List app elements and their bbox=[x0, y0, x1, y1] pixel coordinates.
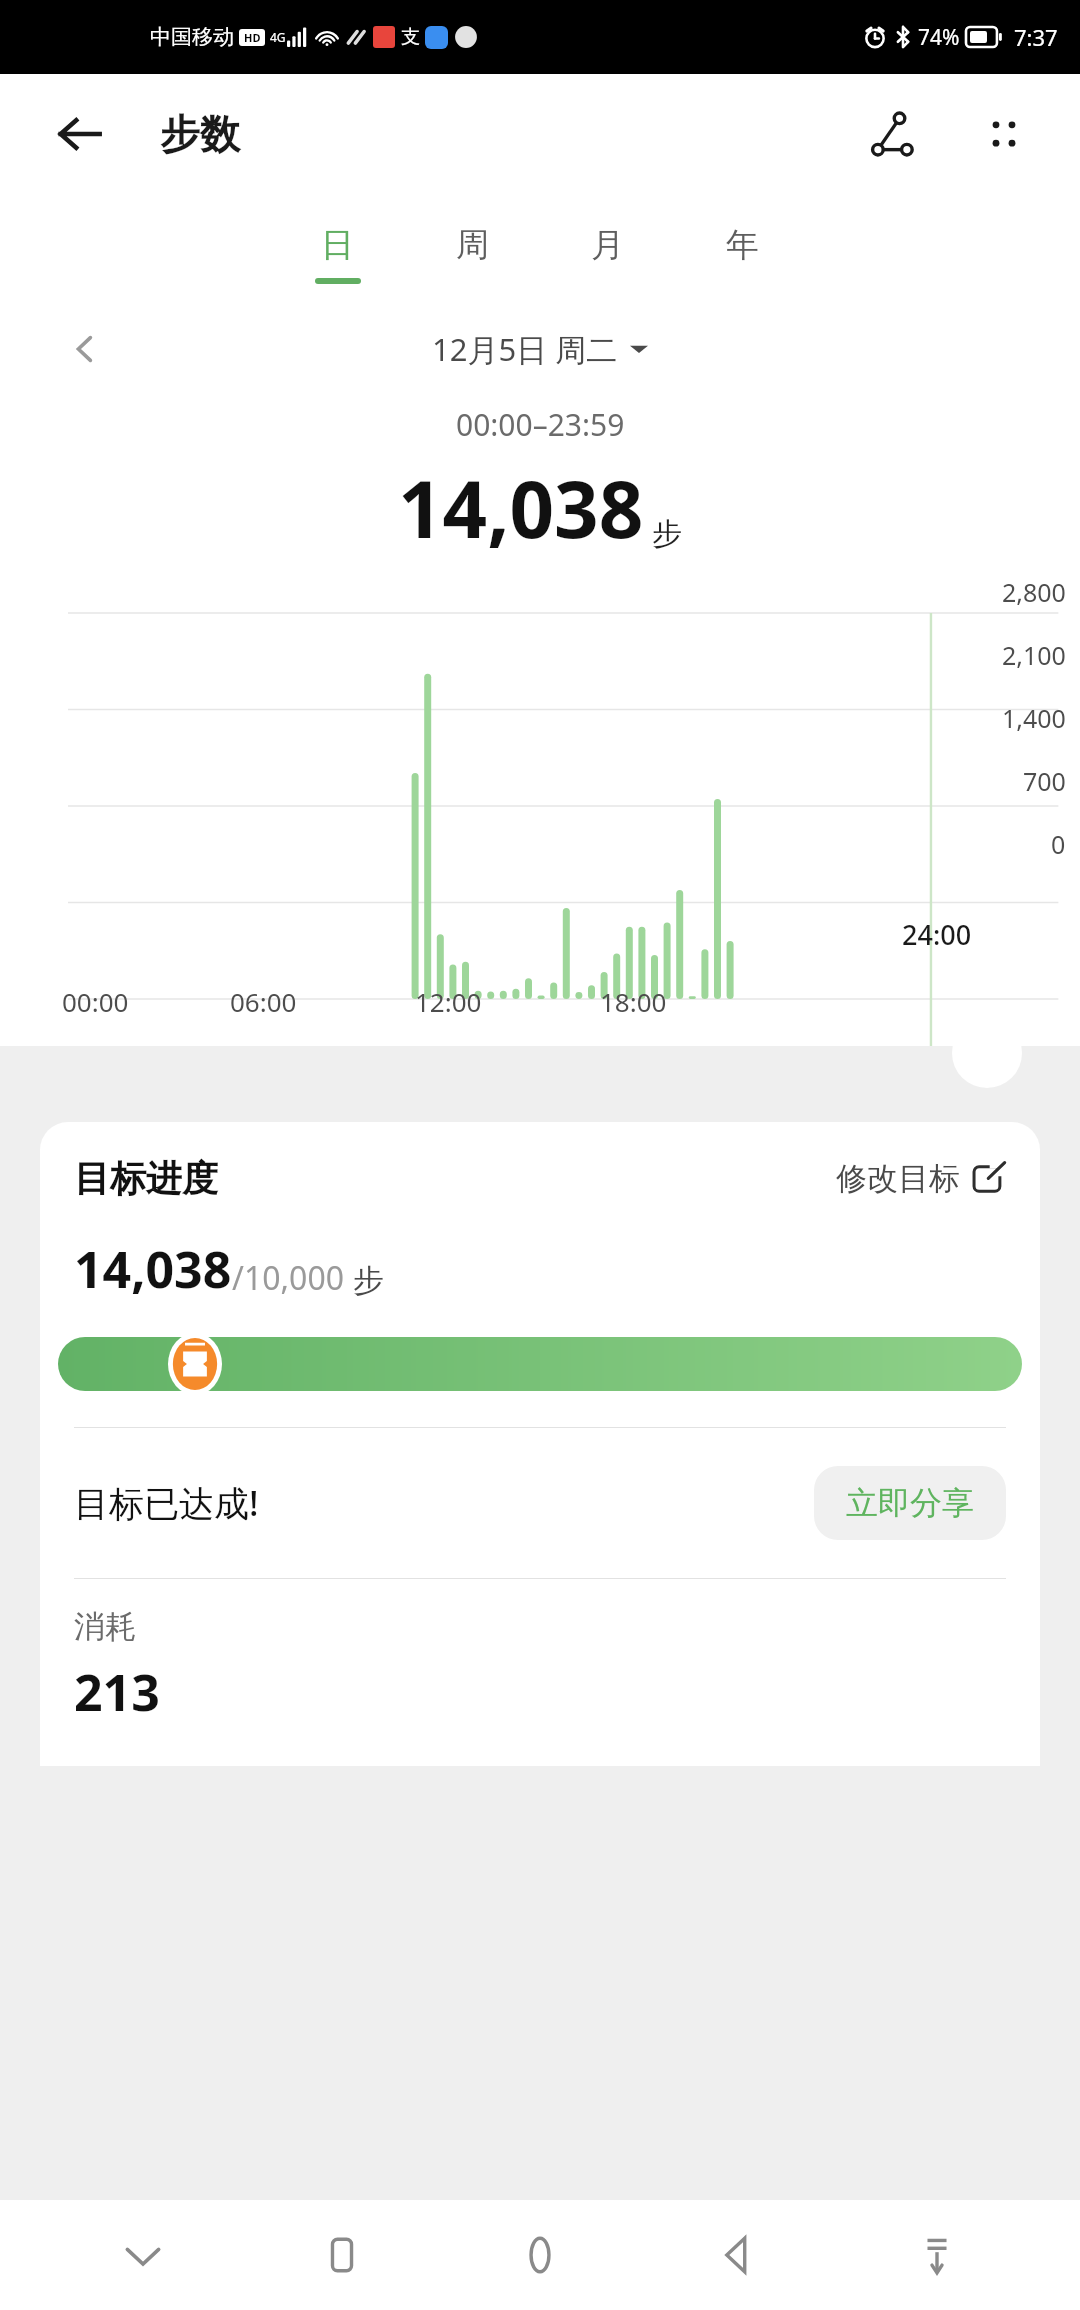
staticText: 2,800 bbox=[1002, 575, 1066, 609]
staticText: 支 bbox=[401, 25, 420, 49]
staticText: 00:00–23:59 bbox=[456, 404, 625, 445]
button[interactable]: 日 bbox=[270, 224, 405, 284]
staticText: 700 bbox=[1023, 764, 1066, 798]
staticText: 14,038 bbox=[398, 455, 644, 561]
staticText: 06:00 bbox=[230, 984, 297, 1019]
button[interactable]: 修改目标 bbox=[836, 1159, 1006, 1198]
staticText: 00:00 bbox=[62, 984, 129, 1019]
staticText: 2,100 bbox=[1002, 638, 1066, 672]
button[interactable]: Split screen bbox=[882, 2200, 992, 2310]
staticText: 14,038 bbox=[74, 1235, 232, 1303]
staticText: 213 bbox=[74, 1658, 160, 1726]
button[interactable]: Home bbox=[485, 2200, 595, 2310]
staticText: 目标已达成! bbox=[74, 1479, 259, 1527]
button[interactable]: Back bbox=[683, 2200, 793, 2310]
staticText: 12月5日 周二 bbox=[432, 328, 618, 370]
staticText: 步 bbox=[353, 1261, 384, 1300]
staticText: 月 bbox=[591, 224, 624, 266]
staticText: 7:37 bbox=[1014, 22, 1058, 52]
staticText: 立即分享 bbox=[846, 1483, 974, 1523]
staticText: 12:00 bbox=[415, 984, 482, 1019]
staticText: 消耗 bbox=[74, 1607, 136, 1646]
staticText: 修改目标 bbox=[836, 1159, 960, 1198]
staticText: 18:00 bbox=[600, 984, 667, 1019]
staticText: 24:00 bbox=[902, 916, 972, 953]
button[interactable]: Hide keyboard bbox=[88, 2200, 198, 2310]
button[interactable]: Back bbox=[46, 101, 112, 167]
staticText: 4G bbox=[270, 29, 286, 45]
button[interactable]: Recents bbox=[287, 2200, 397, 2310]
staticText: 步 bbox=[652, 515, 682, 553]
staticText: 74% bbox=[918, 23, 960, 52]
staticText: 目标进度 bbox=[74, 1156, 218, 1201]
button[interactable]: 月 bbox=[540, 224, 675, 284]
staticText: /10,000 bbox=[232, 1256, 345, 1300]
button[interactable]: More options bbox=[968, 98, 1040, 170]
button[interactable]: 周 bbox=[405, 224, 540, 284]
button[interactable]: Previous day bbox=[55, 319, 115, 379]
staticText: 中国移动 bbox=[150, 24, 234, 50]
button[interactable]: 立即分享 bbox=[814, 1466, 1006, 1540]
staticText: 步数 bbox=[160, 109, 240, 159]
staticText: 周 bbox=[456, 224, 489, 266]
button[interactable]: 12月5日 周二 bbox=[432, 328, 648, 370]
staticText: 1,400 bbox=[1002, 701, 1066, 735]
button[interactable]: 年 bbox=[675, 224, 810, 284]
staticText: 日 bbox=[321, 224, 354, 266]
staticText: 0 bbox=[1051, 827, 1066, 861]
button[interactable]: Share bbox=[858, 98, 930, 170]
staticText: HD bbox=[244, 30, 261, 45]
staticText: 年 bbox=[726, 224, 759, 266]
